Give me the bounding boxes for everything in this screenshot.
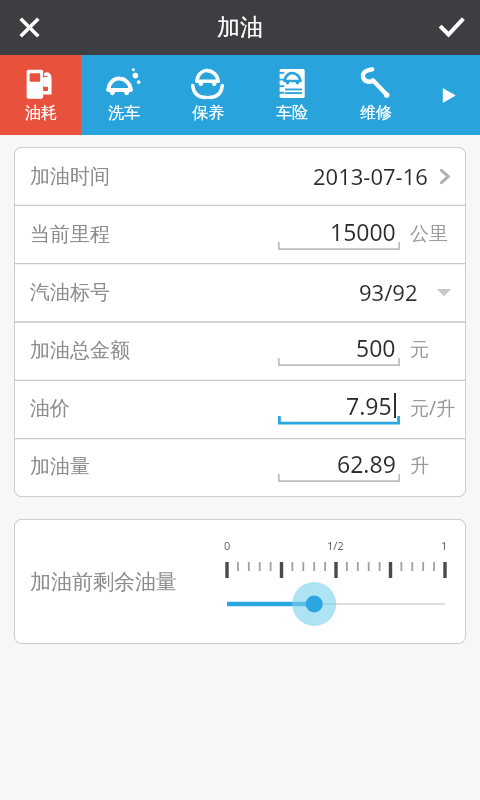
button[interactable]: Confirm bbox=[422, 0, 480, 55]
staticText: 油价 bbox=[30, 396, 70, 421]
button[interactable]: 加油前剩余油量 bbox=[14, 519, 466, 644]
staticText: 保养 bbox=[192, 103, 224, 123]
staticText: 洗车 bbox=[108, 103, 140, 123]
staticText: 500 bbox=[356, 332, 396, 363]
button[interactable]: More categories bbox=[417, 55, 480, 135]
button[interactable]: 汽油标号 bbox=[14, 263, 466, 321]
button[interactable]: 加油量 bbox=[14, 437, 466, 495]
button[interactable]: 加油时间 bbox=[14, 147, 466, 205]
staticText: 汽油标号 bbox=[30, 280, 110, 305]
staticText: 93/92 bbox=[359, 277, 418, 307]
staticText: 加油 bbox=[217, 13, 263, 42]
staticText: 62.89 bbox=[337, 448, 396, 479]
staticText: 2013-07-16 bbox=[313, 161, 428, 191]
staticText: 加油前剩余油量 bbox=[30, 569, 177, 595]
button[interactable]: Close bbox=[0, 0, 58, 55]
staticText: 1 bbox=[441, 538, 448, 553]
staticText: 元/升 bbox=[410, 395, 456, 421]
staticText: 加油总金额 bbox=[30, 338, 130, 363]
staticText: 升 bbox=[410, 454, 429, 478]
staticText: 公里 bbox=[410, 222, 448, 246]
staticText: 7.95 bbox=[346, 390, 392, 421]
staticText: 当前里程 bbox=[30, 222, 110, 247]
staticText: 油耗 bbox=[25, 103, 57, 123]
button[interactable]: 当前里程 bbox=[14, 205, 466, 263]
staticText: 1/2 bbox=[327, 538, 344, 553]
staticText: 维修 bbox=[360, 103, 392, 123]
button[interactable]: 洗车 bbox=[81, 55, 165, 135]
staticText: 元 bbox=[410, 338, 429, 362]
button[interactable]: 维修 bbox=[333, 55, 417, 135]
staticText: 15000 bbox=[330, 216, 396, 247]
staticText: 车险 bbox=[276, 103, 308, 123]
staticText: 0 bbox=[224, 538, 231, 553]
button[interactable]: 保养 bbox=[165, 55, 249, 135]
staticText: 加油量 bbox=[30, 454, 90, 479]
button[interactable]: 油耗 bbox=[0, 55, 81, 135]
button[interactable]: 油价 bbox=[14, 379, 466, 437]
button[interactable]: 车险 bbox=[249, 55, 333, 135]
button[interactable]: 加油总金额 bbox=[14, 321, 466, 379]
staticText: 加油时间 bbox=[30, 164, 110, 189]
